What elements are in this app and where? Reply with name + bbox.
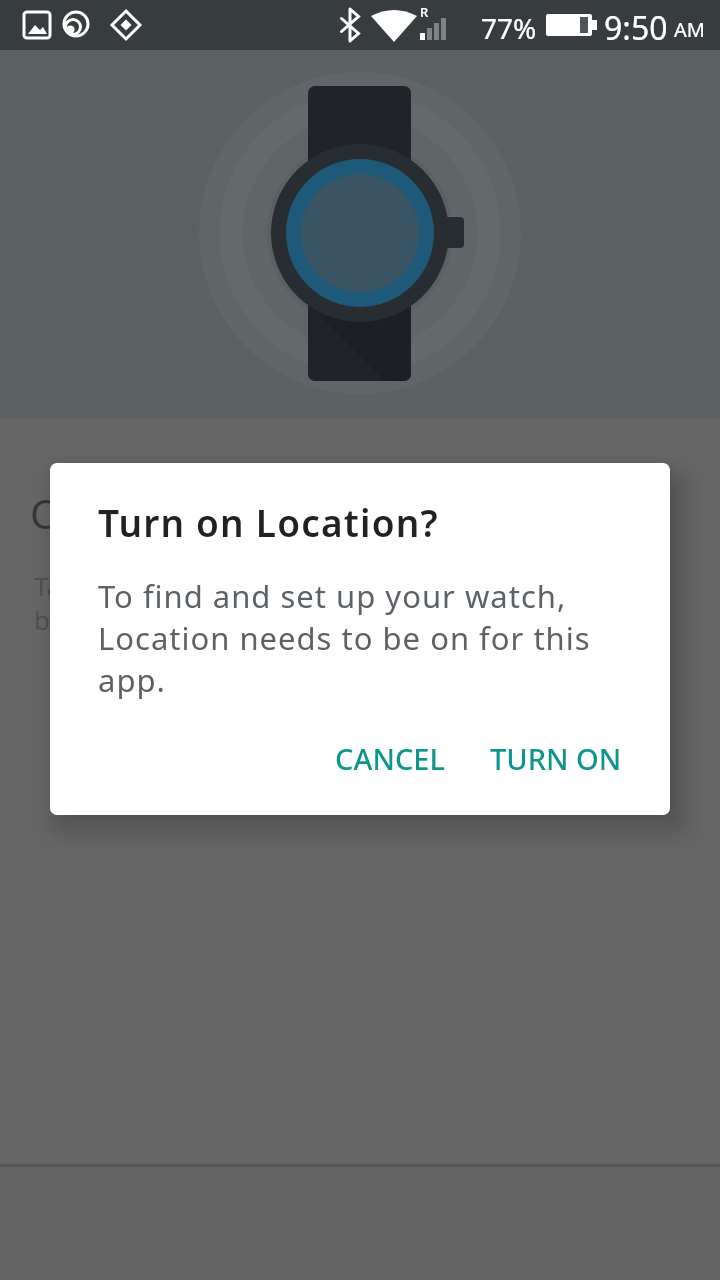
staticText: To find and set up your watch, Location … bbox=[98, 575, 591, 701]
staticText: AM bbox=[674, 16, 705, 43]
button[interactable]: TURN ON bbox=[476, 732, 636, 784]
staticText: Tap your watch's name when it shows belo… bbox=[34, 568, 494, 638]
button[interactable]: CANCEL bbox=[315, 732, 465, 784]
staticText: TURN ON bbox=[490, 739, 622, 778]
staticText: CANCEL bbox=[335, 739, 445, 778]
staticText: Turn on Location? bbox=[98, 497, 439, 547]
staticText: 77% bbox=[481, 9, 537, 47]
staticText: Choose your watch bbox=[30, 486, 389, 540]
staticText: 9:50 bbox=[604, 6, 668, 50]
staticText: R bbox=[420, 3, 429, 21]
